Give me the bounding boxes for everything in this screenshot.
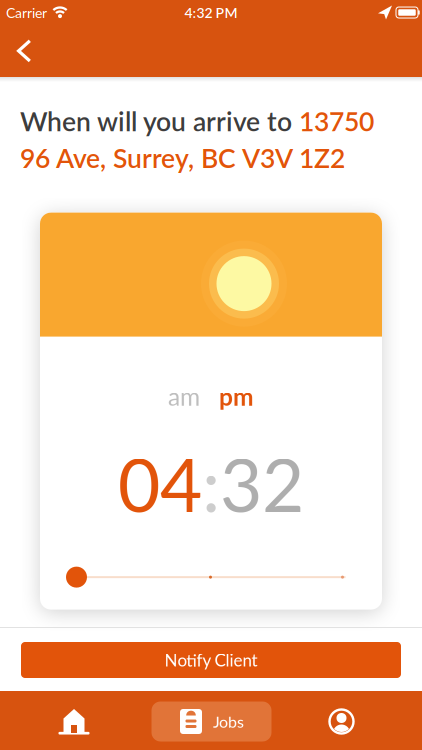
- staticText: 04: [118, 440, 202, 528]
- staticText: am: [168, 382, 200, 411]
- button[interactable]: Jobs: [149, 701, 269, 741]
- staticText: Jobs: [213, 712, 244, 731]
- staticText: 4:32 PM: [184, 4, 237, 21]
- staticText: 96 Ave, Surrey, BC V3V 1Z2: [20, 142, 345, 174]
- staticText: Carrier: [6, 4, 47, 21]
- button[interactable]: Profile: [328, 708, 422, 735]
- staticText: pm: [219, 382, 254, 411]
- button[interactable]: Back: [0, 30, 31, 72]
- staticText: 32: [220, 440, 304, 528]
- staticText: Notify Client: [164, 650, 257, 670]
- button[interactable]: Home: [0, 708, 91, 735]
- button[interactable]: pm: [219, 382, 254, 411]
- staticText: :: [202, 440, 220, 528]
- button[interactable]: Time slider: [66, 567, 87, 588]
- button[interactable]: Notify Client: [21, 642, 401, 678]
- staticText: 13750: [299, 105, 374, 137]
- button[interactable]: am: [168, 382, 200, 411]
- staticText: When will you arrive to: [20, 105, 299, 137]
